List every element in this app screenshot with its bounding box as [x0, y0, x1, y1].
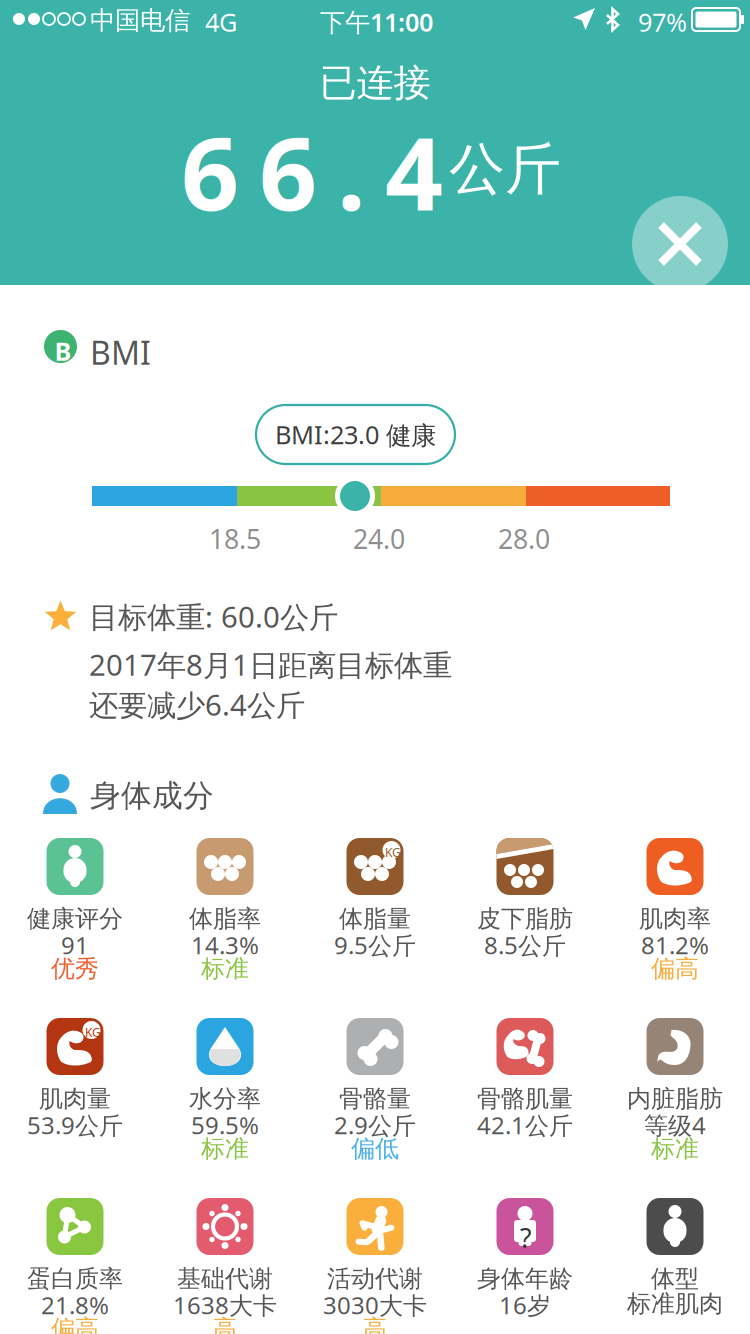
- button[interactable]: 骨骼量: [300, 1018, 450, 1198]
- staticText: KG: [385, 844, 401, 860]
- staticText: 21.8%: [41, 1289, 109, 1321]
- staticText: 骨骼量: [339, 1084, 411, 1113]
- staticText: 健康评分: [27, 904, 123, 933]
- button[interactable]: 关闭: [632, 196, 728, 292]
- staticText: 59.5%: [191, 1109, 259, 1141]
- staticText: 高: [213, 1314, 237, 1334]
- staticText: 优秀: [51, 954, 99, 983]
- staticText: 标准: [201, 954, 249, 983]
- staticText: 14.3%: [191, 929, 259, 961]
- button[interactable]: 内脏脂肪: [600, 1018, 750, 1198]
- staticText: 体脂量: [339, 904, 411, 933]
- button[interactable]: 肌肉率: [600, 838, 750, 1018]
- button[interactable]: 骨骼肌量: [450, 1018, 600, 1198]
- staticText: 身体成分: [90, 777, 214, 815]
- staticText: 皮下脂肪: [477, 904, 573, 933]
- staticText: 53.9公斤: [27, 1109, 123, 1141]
- button[interactable]: 水分率: [150, 1018, 300, 1198]
- staticText: 体脂率: [189, 904, 261, 933]
- staticText: 2.9公斤: [334, 1109, 416, 1141]
- button[interactable]: ?: [450, 1198, 600, 1334]
- button[interactable]: 体脂率: [150, 838, 300, 1018]
- staticText: 1638大卡: [173, 1289, 277, 1321]
- staticText: BMI: [90, 331, 151, 373]
- staticText: 标准: [201, 1134, 249, 1163]
- staticText: 内脏脂肪: [627, 1084, 723, 1113]
- staticText: 身体年龄: [477, 1264, 573, 1293]
- staticText: 16岁: [499, 1289, 551, 1321]
- button[interactable]: 皮下脂肪: [450, 838, 600, 1018]
- staticText: 偏低: [351, 1134, 399, 1163]
- staticText: 骨骼肌量: [477, 1084, 573, 1113]
- staticText: 66.4: [181, 104, 443, 239]
- staticText: 目标体重: 60.0公斤: [89, 597, 338, 636]
- staticText: 公斤: [449, 135, 561, 204]
- staticText: 肌肉率: [639, 904, 711, 933]
- staticText: 高: [363, 1314, 387, 1334]
- staticText: 4G: [205, 5, 237, 39]
- staticText: 8.5公斤: [484, 929, 566, 961]
- button[interactable]: 蛋白质率: [0, 1198, 150, 1334]
- staticText: 97%: [638, 5, 687, 39]
- button[interactable]: 健康评分: [0, 838, 150, 1018]
- staticText: 活动代谢: [327, 1264, 423, 1293]
- staticText: 91: [61, 929, 89, 961]
- staticText: 中国电信: [90, 5, 190, 36]
- staticText: 已连接: [319, 60, 430, 106]
- staticText: 42.1公斤: [477, 1109, 573, 1141]
- staticText: BMI:23.0 健康: [275, 418, 436, 451]
- button[interactable]: 基础代谢: [150, 1198, 300, 1334]
- staticText: 3030大卡: [323, 1289, 427, 1321]
- staticText: 81.2%: [641, 929, 709, 961]
- button[interactable]: 体型: [600, 1198, 750, 1334]
- staticText: ?: [520, 1220, 532, 1255]
- staticText: 标准: [651, 1134, 699, 1163]
- staticText: 肌肉量: [39, 1084, 111, 1113]
- staticText: 9.5公斤: [334, 929, 416, 961]
- staticText: 2017年8月1日距离目标体重: [89, 645, 452, 684]
- staticText: 28.0: [498, 521, 550, 556]
- staticText: 偏高: [51, 1314, 99, 1334]
- staticText: 偏高: [651, 954, 699, 983]
- staticText: 标准肌肉: [627, 1289, 723, 1318]
- staticText: 下午11:00: [320, 5, 433, 39]
- button[interactable]: KG: [0, 1018, 150, 1198]
- button[interactable]: KG: [300, 838, 450, 1018]
- staticText: 水分率: [189, 1084, 261, 1113]
- staticText: 18.5: [209, 521, 261, 556]
- staticText: B: [54, 334, 71, 368]
- staticText: 蛋白质率: [27, 1264, 123, 1293]
- staticText: 体型: [651, 1264, 699, 1293]
- staticText: 等级4: [644, 1109, 706, 1141]
- staticText: KG: [85, 1024, 101, 1040]
- staticText: 基础代谢: [177, 1264, 273, 1293]
- staticText: 还要减少6.4公斤: [89, 685, 305, 724]
- button[interactable]: 活动代谢: [300, 1198, 450, 1334]
- staticText: 24.0: [353, 521, 405, 556]
